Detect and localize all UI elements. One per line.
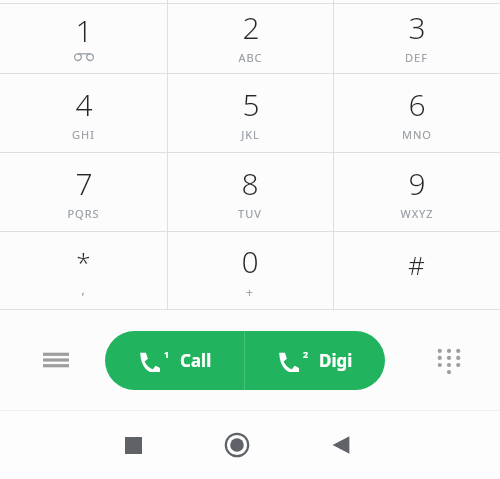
staticText: 2 (303, 348, 309, 360)
button[interactable]: Menu (32, 336, 80, 384)
staticText: PQRS (67, 206, 100, 221)
staticText: 6 (408, 84, 426, 125)
staticText: , (81, 281, 86, 297)
staticText: 7 (75, 163, 93, 204)
button[interactable]: Back (313, 417, 369, 473)
staticText: 1 (164, 348, 170, 360)
staticText: 0 (241, 241, 259, 282)
staticText: GHI (72, 127, 95, 142)
button[interactable]: 1 (0, 0, 167, 73)
staticText: MNO (402, 127, 432, 142)
staticText: 9 (408, 163, 426, 204)
staticText: 2 (242, 7, 260, 48)
staticText: 3 (408, 7, 426, 48)
staticText: 1 (75, 10, 93, 51)
staticText: TUV (238, 206, 262, 221)
staticText: + (246, 284, 254, 300)
staticText: 4 (75, 84, 93, 125)
button[interactable]: 8 (167, 152, 333, 231)
staticText: ABC (238, 50, 263, 65)
button[interactable]: Dialpad (426, 337, 472, 383)
staticText: DEF (405, 50, 428, 65)
button[interactable]: 2 (167, 0, 333, 73)
button[interactable]: 5 (167, 73, 333, 152)
staticText: 8 (241, 163, 259, 204)
button[interactable]: 7 (0, 152, 167, 231)
button[interactable]: Home (209, 417, 265, 473)
staticText: WXYZ (400, 206, 434, 221)
button[interactable]: # (333, 231, 500, 310)
staticText: Digi (319, 349, 353, 372)
button[interactable]: 4 (0, 73, 167, 152)
staticText: 5 (242, 84, 260, 125)
button[interactable]: 2 (245, 331, 385, 390)
button[interactable]: 0 (167, 231, 333, 310)
button[interactable]: 3 (333, 0, 500, 73)
button[interactable]: 6 (333, 73, 500, 152)
button[interactable]: Recents (105, 417, 161, 473)
button[interactable]: 9 (333, 152, 500, 231)
staticText: * (76, 244, 91, 279)
staticText: Call (180, 349, 212, 372)
button[interactable]: 1 (105, 331, 244, 390)
staticText: JKL (241, 127, 260, 142)
staticText: # (408, 247, 425, 282)
button[interactable]: * (0, 231, 167, 310)
